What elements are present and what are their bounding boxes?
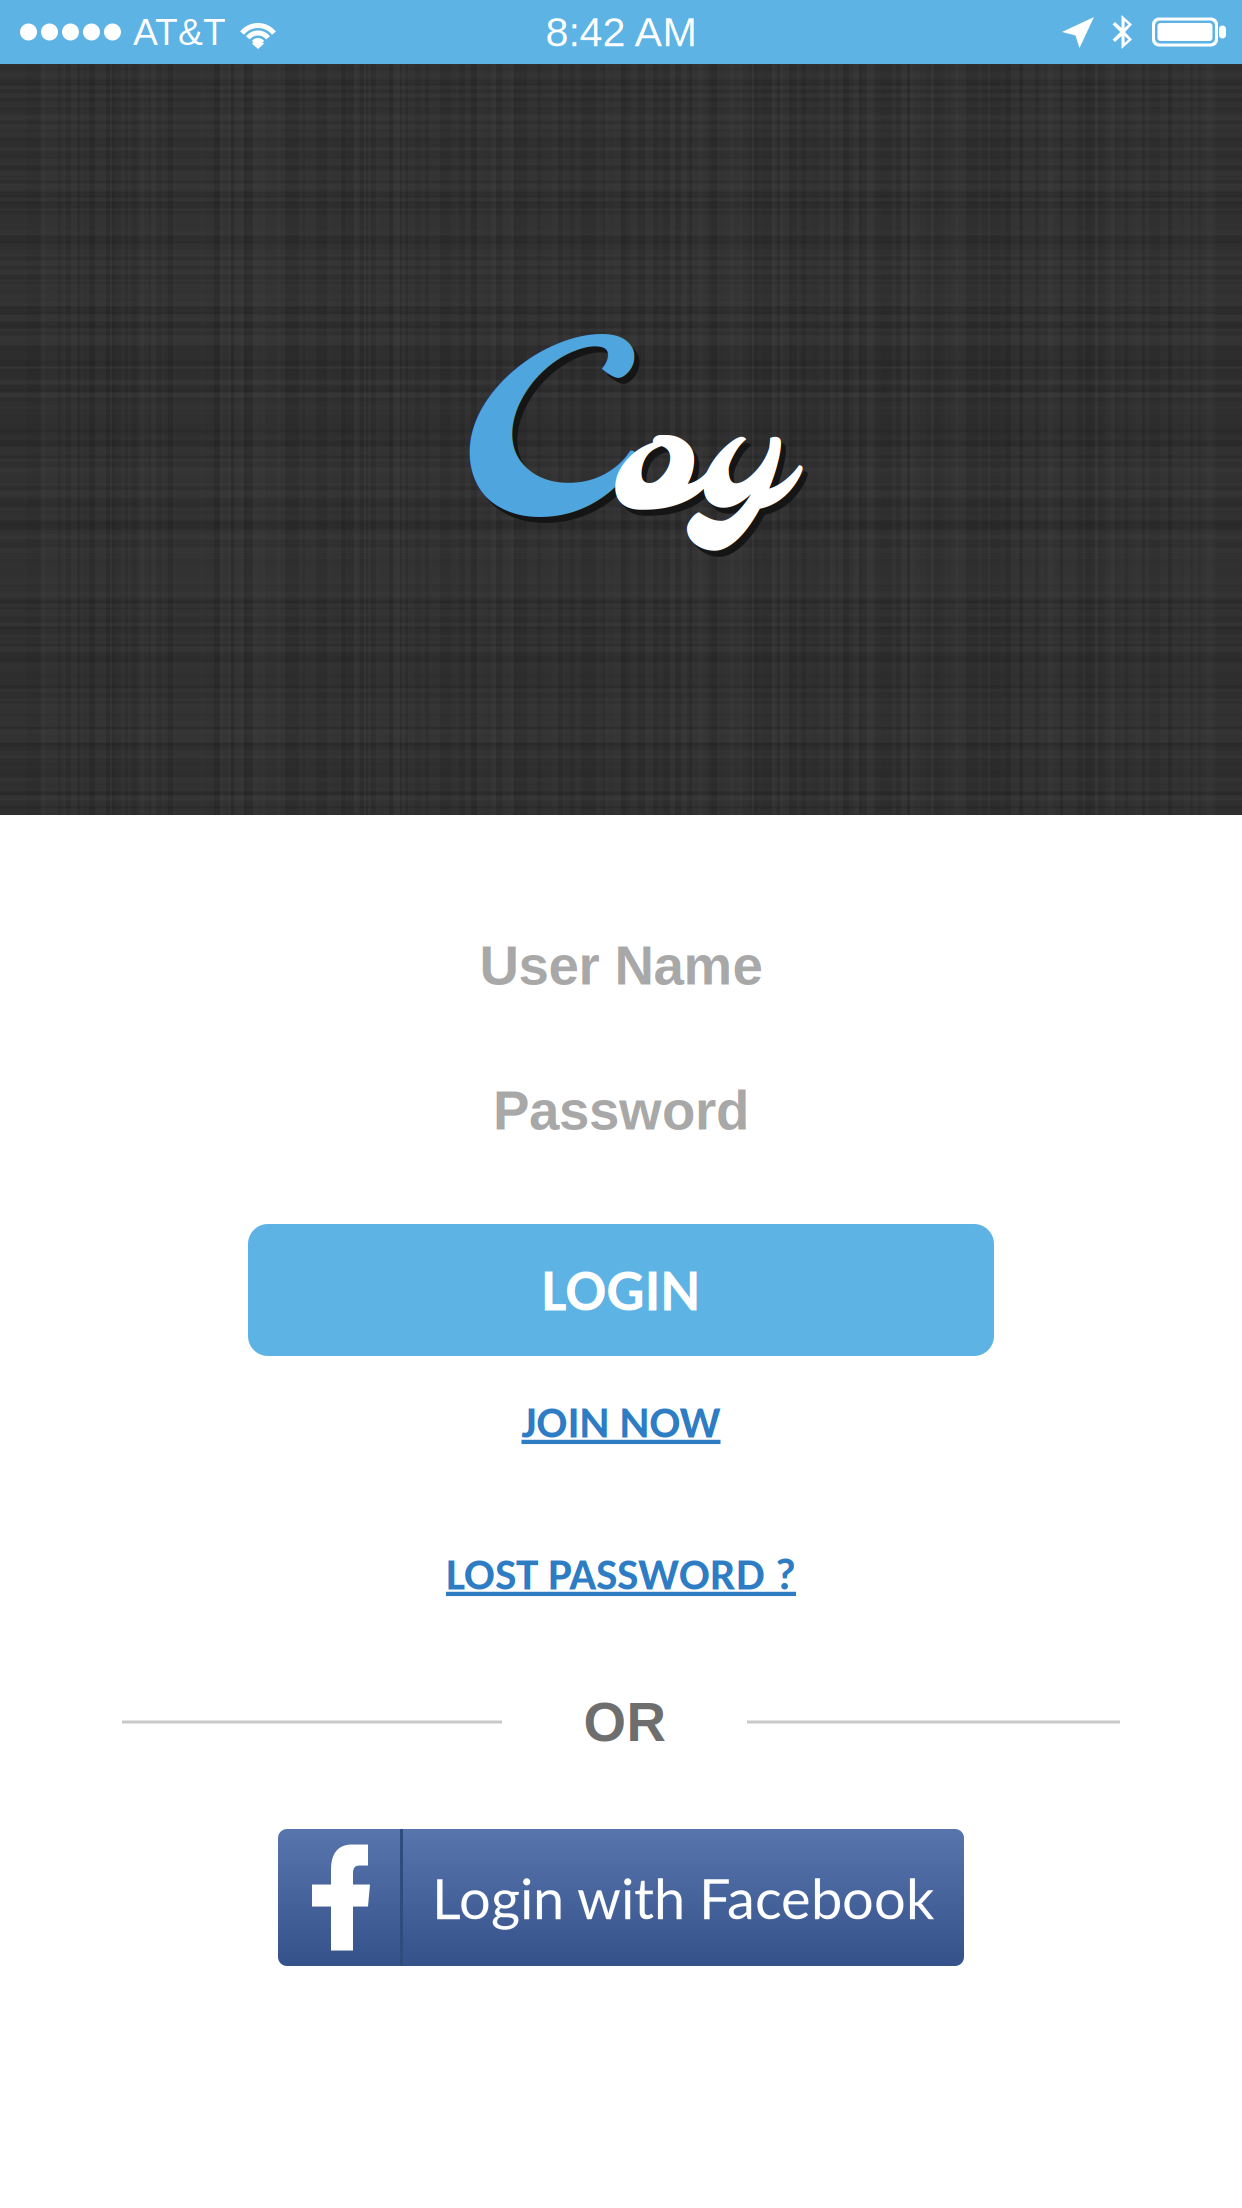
staticText: C [458,304,610,589]
staticText: JOIN NOW [521,1394,720,1450]
staticText: 8:42 AM [545,9,696,55]
button[interactable]: LOST PASSWORD ? [446,1550,796,1598]
staticText: oy [612,358,784,567]
staticText: C [463,310,615,595]
button[interactable]: LOGIN [248,1224,994,1356]
staticText: Password [493,1080,749,1141]
button[interactable]: Login with Facebook [278,1829,964,1966]
button[interactable]: JOIN NOW [521,1398,720,1446]
staticText: LOGIN [541,1253,700,1327]
staticText: LOST PASSWORD ? [446,1546,796,1602]
staticText: Login with Facebook [432,1864,934,1931]
staticText: OR [583,1691,665,1753]
staticText: AT&T [133,11,226,53]
staticText: User Name [479,935,762,996]
staticText: oy [617,364,789,573]
